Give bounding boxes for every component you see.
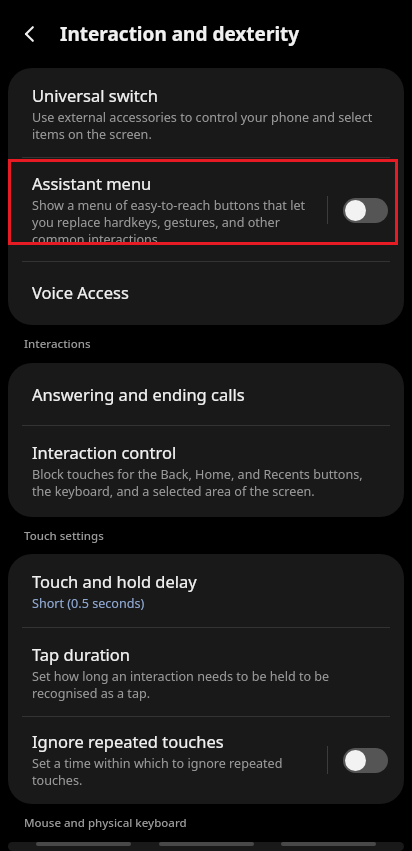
staticText: Assistant menu: [32, 172, 152, 194]
staticText: Touch and hold delay: [32, 570, 197, 592]
staticText: Interactions: [24, 336, 91, 352]
staticText: Set a time within which to ignore repeat…: [32, 755, 317, 789]
staticText: Use external accessories to control your…: [32, 109, 384, 143]
staticText: Interaction control: [32, 441, 177, 463]
button[interactable]: Tap duration: [8, 628, 404, 716]
button[interactable]: Interaction control: [8, 426, 404, 517]
staticText: Answering and ending calls: [32, 383, 245, 405]
staticText: Show a menu of easy-to-reach buttons tha…: [32, 197, 317, 248]
staticText: Tap duration: [32, 643, 131, 665]
button[interactable]: Navigate up: [8, 12, 52, 56]
button[interactable]: Voice Access: [8, 262, 404, 325]
button[interactable]: Auto action after pointer stops: [8, 842, 404, 851]
staticText: Short (0.5 seconds): [32, 595, 145, 612]
staticText: Block touches for the Back, Home, and Re…: [32, 466, 384, 500]
button[interactable]: Assistant menu: [8, 158, 404, 261]
button[interactable]: Ignore repeated touches: [8, 717, 404, 804]
button[interactable]: Touch and hold delay: [8, 554, 404, 627]
button[interactable]: Toggle setting: [343, 198, 388, 223]
staticText: Mouse and physical keyboard: [24, 815, 187, 831]
button[interactable]: Answering and ending calls: [8, 363, 404, 425]
button[interactable]: Toggle setting: [343, 748, 388, 773]
staticText: Touch settings: [24, 528, 104, 544]
staticText: Ignore repeated touches: [32, 730, 224, 752]
staticText: Set how long an interaction needs to be …: [32, 668, 384, 702]
staticText: Interaction and dexterity: [60, 21, 300, 47]
staticText: Universal switch: [32, 84, 158, 106]
button[interactable]: Universal switch: [8, 68, 404, 157]
staticText: Voice Access: [32, 281, 129, 303]
